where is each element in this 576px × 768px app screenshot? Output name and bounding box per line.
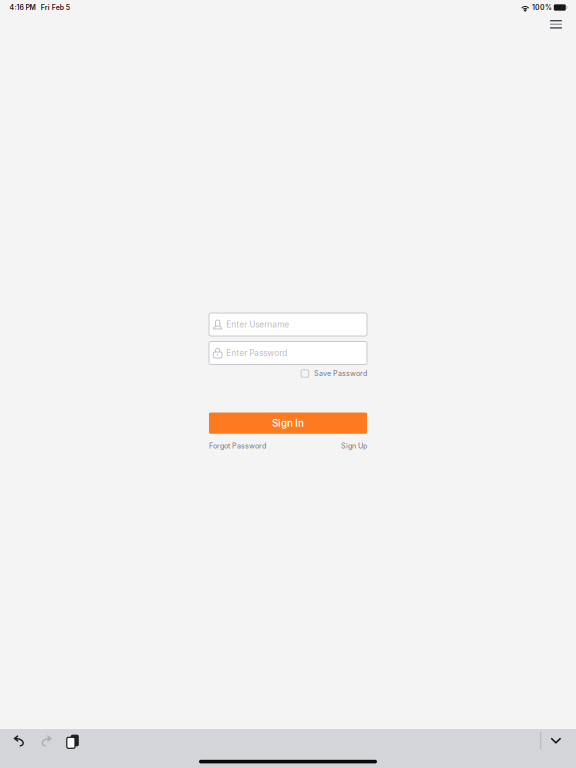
button[interactable]: Forgot Password	[209, 442, 266, 450]
staticText: Save Password	[314, 369, 367, 378]
button[interactable]: Redo	[37, 731, 54, 750]
staticText: Sign Up	[341, 442, 367, 450]
button[interactable]: Paste	[62, 730, 80, 751]
staticText: Fri Feb 5	[41, 3, 70, 12]
staticText: 4:16 PM	[9, 3, 35, 12]
staticText: 100%	[532, 3, 552, 12]
staticText: Enter Password	[226, 348, 287, 358]
button[interactable]: Sign Up	[341, 442, 367, 450]
staticText: Forgot Password	[209, 442, 266, 450]
button[interactable]: Sign In	[209, 412, 367, 434]
button[interactable]: Save Password	[209, 369, 367, 377]
staticText: Sign In	[272, 417, 304, 429]
button[interactable]: Undo	[11, 731, 29, 750]
button[interactable]: Hide keyboard	[541, 731, 566, 750]
button[interactable]: Menu	[543, 15, 569, 34]
staticText: Enter Username	[226, 319, 289, 329]
